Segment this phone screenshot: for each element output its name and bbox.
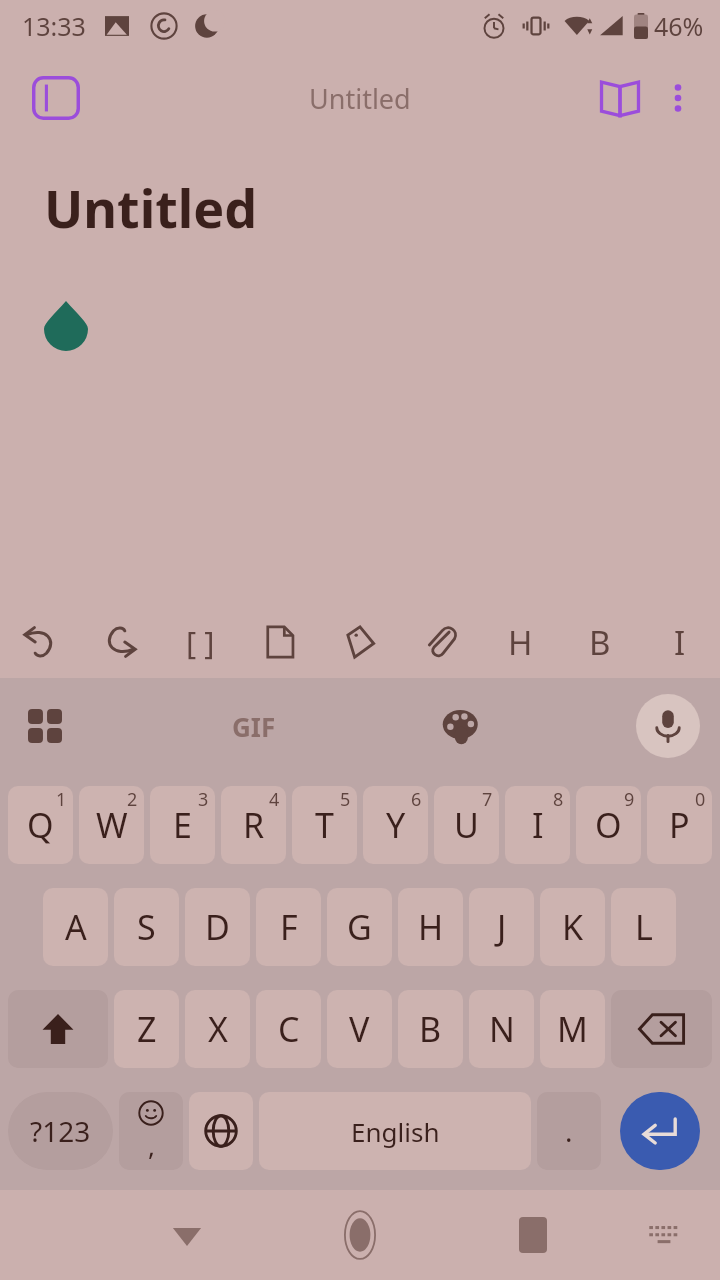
staticText: Untitled: [44, 172, 258, 243]
staticText: B: [419, 1006, 442, 1052]
button[interactable]: English: [259, 1092, 531, 1170]
staticText: L: [635, 904, 653, 950]
button[interactable]: New document: [240, 606, 320, 678]
button[interactable]: F: [256, 888, 321, 966]
staticText: 7: [482, 787, 493, 812]
button[interactable]: More options: [650, 70, 706, 126]
staticText: M: [557, 1006, 588, 1052]
button[interactable]: W: [79, 786, 144, 864]
button[interactable]: U: [434, 786, 499, 864]
button[interactable]: Q: [8, 786, 73, 864]
staticText: F: [280, 904, 298, 950]
staticText: 8: [553, 787, 564, 812]
staticText: I: [532, 802, 544, 848]
button[interactable]: Shift: [8, 990, 108, 1068]
button[interactable]: Redo: [80, 606, 160, 678]
staticText: W: [96, 802, 128, 848]
staticText: 13:33: [22, 9, 86, 43]
staticText: 1: [56, 787, 67, 812]
button[interactable]: Emoji: [119, 1092, 183, 1170]
staticText: 46%: [654, 9, 704, 43]
button[interactable]: X: [185, 990, 250, 1068]
button[interactable]: Heading: [480, 606, 560, 678]
button[interactable]: Stickers: [14, 695, 76, 757]
button[interactable]: Change language: [189, 1092, 253, 1170]
staticText: ,: [148, 1128, 155, 1163]
button[interactable]: B: [398, 990, 463, 1068]
button[interactable]: T: [292, 786, 357, 864]
staticText: 2: [127, 787, 138, 812]
button[interactable]: Recent apps: [498, 1200, 568, 1270]
staticText: T: [315, 802, 334, 848]
staticText: Y: [386, 802, 406, 848]
staticText: English: [351, 1114, 440, 1149]
button[interactable]: Z: [114, 990, 179, 1068]
button[interactable]: R: [221, 786, 286, 864]
staticText: N: [489, 1006, 515, 1052]
button[interactable]: N: [469, 990, 534, 1068]
staticText: 0: [695, 787, 706, 812]
button[interactable]: S: [114, 888, 179, 966]
staticText: J: [497, 904, 507, 950]
staticText: U: [454, 802, 479, 848]
staticText: Untitled: [309, 80, 411, 117]
button[interactable]: Tag: [320, 606, 400, 678]
staticText: 3: [198, 787, 209, 812]
staticText: B: [589, 620, 611, 665]
staticText: 6: [411, 787, 422, 812]
button[interactable]: J: [469, 888, 534, 966]
staticText: H: [418, 904, 444, 950]
staticText: GIF: [232, 709, 276, 744]
staticText: .: [565, 1112, 573, 1150]
button[interactable]: .: [537, 1092, 601, 1170]
button[interactable]: D: [185, 888, 250, 966]
button[interactable]: Brackets: [160, 606, 240, 678]
staticText: A: [65, 904, 87, 950]
staticText: H: [508, 620, 533, 665]
staticText: S: [137, 904, 156, 950]
button[interactable]: Toggle sidebar: [26, 68, 86, 128]
button[interactable]: Reading mode: [590, 68, 650, 128]
button[interactable]: Attach file: [400, 606, 480, 678]
button[interactable]: Back: [152, 1200, 222, 1270]
button[interactable]: Enter: [620, 1092, 700, 1170]
button[interactable]: C: [256, 990, 321, 1068]
staticText: Q: [27, 802, 54, 848]
staticText: D: [205, 904, 230, 950]
staticText: G: [347, 904, 372, 950]
button[interactable]: K: [540, 888, 605, 966]
staticText: ?123: [30, 1112, 91, 1150]
staticText: 5: [340, 787, 351, 812]
button[interactable]: Themes: [430, 695, 492, 757]
button[interactable]: Switch keyboard: [636, 1207, 692, 1263]
button[interactable]: L: [611, 888, 676, 966]
button[interactable]: Bold: [560, 606, 640, 678]
staticText: I: [674, 620, 686, 665]
button[interactable]: Undo: [0, 606, 80, 678]
button[interactable]: Italic: [640, 606, 720, 678]
staticText: X: [208, 1006, 228, 1052]
staticText: Z: [137, 1006, 157, 1052]
button[interactable]: Voice input: [636, 694, 700, 758]
button[interactable]: E: [150, 786, 215, 864]
staticText: 4: [269, 787, 280, 812]
button[interactable]: V: [327, 990, 392, 1068]
staticText: E: [173, 802, 192, 848]
button[interactable]: H: [398, 888, 463, 966]
button[interactable]: P: [647, 786, 712, 864]
button[interactable]: GIF: [208, 695, 300, 757]
button[interactable]: Y: [363, 786, 428, 864]
button[interactable]: M: [540, 990, 605, 1068]
staticText: [ ]: [186, 621, 215, 663]
button[interactable]: Backspace: [611, 990, 712, 1068]
staticText: 9: [624, 787, 635, 812]
button[interactable]: ?123: [8, 1092, 113, 1170]
staticText: O: [595, 802, 622, 848]
button[interactable]: I: [505, 786, 570, 864]
button[interactable]: Home: [321, 1196, 399, 1274]
staticText: K: [562, 904, 584, 950]
button[interactable]: O: [576, 786, 641, 864]
button[interactable]: A: [43, 888, 108, 966]
staticText: P: [669, 802, 690, 848]
button[interactable]: G: [327, 888, 392, 966]
